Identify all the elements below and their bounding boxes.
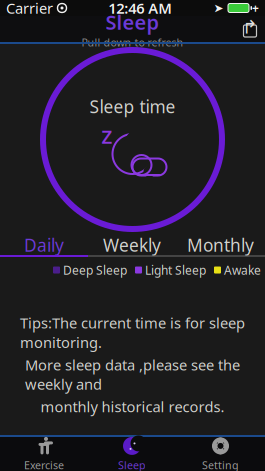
button[interactable]: Share xyxy=(235,16,265,42)
button[interactable]: Setting xyxy=(176,437,265,471)
staticText: Monthly xyxy=(187,233,254,256)
staticText: Sleep xyxy=(105,9,159,35)
staticText: Tips:The current time is for sleep monit… xyxy=(20,313,245,352)
staticText: Daily xyxy=(24,233,64,256)
button[interactable]: Monthly xyxy=(176,235,265,255)
staticText: Weekly xyxy=(103,233,161,256)
staticText: Sleep xyxy=(118,458,146,471)
staticText: Pull down to refresh xyxy=(81,35,183,49)
staticText: Z xyxy=(101,124,112,149)
staticText: ➤ xyxy=(213,1,223,15)
button[interactable]: Weekly xyxy=(88,235,176,255)
staticText: Carrier xyxy=(6,0,53,18)
staticText: ↱ xyxy=(242,16,258,38)
button[interactable]: Sleep xyxy=(88,437,176,471)
button[interactable]: Daily xyxy=(0,235,88,255)
staticText: Awake xyxy=(224,262,261,278)
staticText: Sleep time xyxy=(89,95,175,118)
staticText: Setting xyxy=(202,458,239,471)
staticText: 12:46 AM xyxy=(108,0,172,18)
staticText: + xyxy=(252,0,259,16)
staticText: monthly historical records. xyxy=(40,397,224,416)
staticText: Light Sleep xyxy=(145,262,206,278)
button[interactable]: Exercise xyxy=(0,437,88,471)
staticText: More sleep data ,please see the weekly a… xyxy=(25,355,240,394)
staticText: Deep Sleep xyxy=(63,262,127,278)
staticText: Exercise xyxy=(24,458,64,471)
